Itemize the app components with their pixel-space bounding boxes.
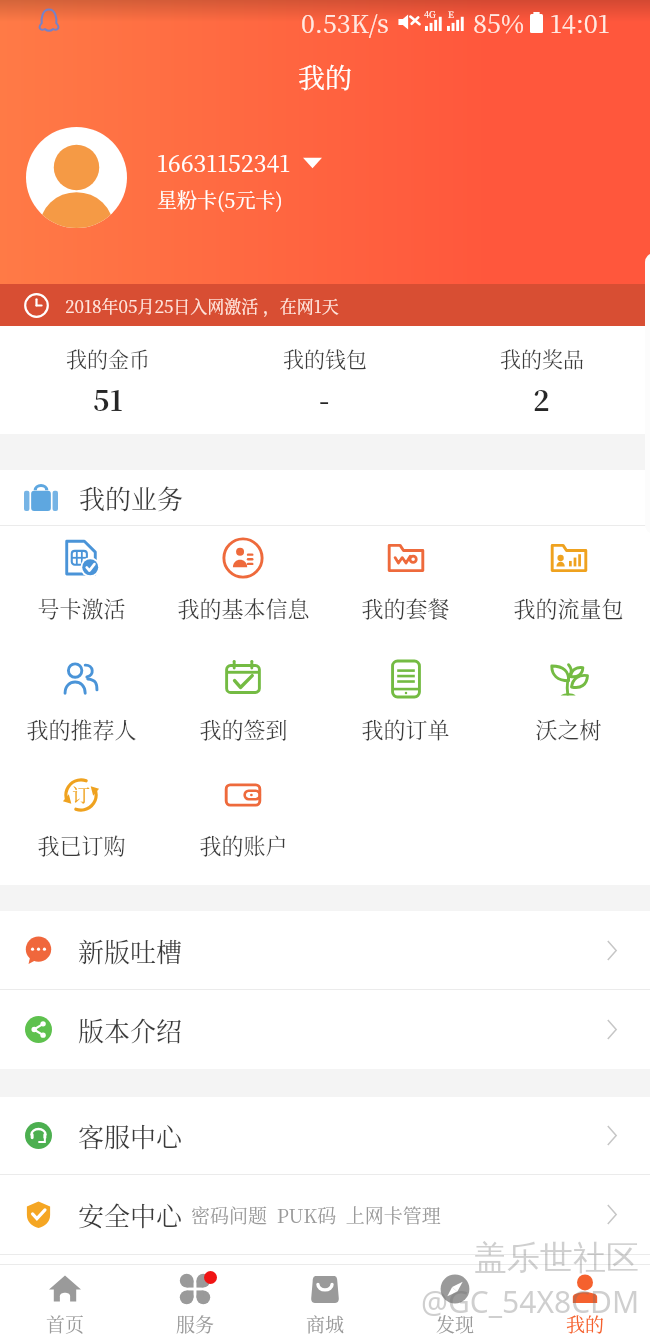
staticText: 2 <box>533 379 550 419</box>
staticText: 新版吐槽 <box>78 932 183 969</box>
staticText: 我的基本信息 <box>177 592 310 624</box>
button[interactable]: 我的基本信息 <box>162 537 324 658</box>
button[interactable]: 沃之树 <box>487 658 650 774</box>
staticText: 版本介绍 <box>78 1011 183 1048</box>
button[interactable]: 我的钱包 <box>216 326 433 434</box>
staticText: 号卡激活 <box>37 592 126 624</box>
staticText: 51 <box>93 379 123 419</box>
button[interactable]: 版本介绍 <box>0 990 650 1069</box>
button[interactable]: 服务 <box>130 1265 260 1336</box>
staticText: 订 <box>72 781 90 807</box>
staticText: 我的奖品 <box>500 343 584 373</box>
staticText: 我的业务 <box>79 479 184 516</box>
button[interactable]: 我的订单 <box>324 658 487 774</box>
button[interactable]: 订 <box>0 774 162 885</box>
staticText: 0.53K/s <box>301 4 389 40</box>
button[interactable]: 号卡激活 <box>0 537 162 658</box>
staticText: 14:01 <box>550 4 610 40</box>
staticText: 客服中心 <box>78 1117 183 1154</box>
staticText: 我的 <box>298 57 352 96</box>
button[interactable]: 我的账户 <box>162 774 324 885</box>
button[interactable]: 安全中心 <box>0 1175 650 1254</box>
staticText: 沃之树 <box>535 713 602 745</box>
staticText: 我的套餐 <box>361 592 450 624</box>
staticText: 85% <box>473 4 524 40</box>
button[interactable]: 商城 <box>260 1265 390 1336</box>
button[interactable]: 我的流量包 <box>487 537 650 658</box>
staticText: 我的流量包 <box>513 592 624 624</box>
button[interactable]: 新版吐槽 <box>0 911 650 989</box>
staticText: E <box>448 8 454 21</box>
staticText: 服务 <box>176 1310 215 1336</box>
staticText: 4G <box>424 8 436 21</box>
button[interactable]: 我的 <box>520 1265 650 1336</box>
staticText: @GC_54X8CDM <box>421 1281 640 1322</box>
button[interactable]: 我的签到 <box>162 658 324 774</box>
staticText: - <box>319 379 330 419</box>
staticText: 我的推荐人 <box>26 713 137 745</box>
staticText: 星粉卡(5元卡) <box>157 185 283 214</box>
staticText: 我已订购 <box>37 829 126 861</box>
staticText: 我的钱包 <box>283 343 367 373</box>
staticText: 盖乐世社区 <box>474 1237 639 1279</box>
staticText: 密码问题 PUK码 上网卡管理 <box>191 1201 441 1228</box>
button[interactable]: 我的业务 <box>0 470 650 525</box>
staticText: 我的金币 <box>66 343 150 373</box>
button[interactable]: 我的推荐人 <box>0 658 162 774</box>
staticText: 商城 <box>306 1310 345 1336</box>
staticText: 安全中心 <box>78 1196 183 1233</box>
staticText: 我的账户 <box>199 829 288 861</box>
staticText: 发现 <box>436 1310 475 1336</box>
button[interactable]: 我的奖品 <box>433 326 650 434</box>
staticText: 首页 <box>46 1310 85 1336</box>
staticText: 我的订单 <box>361 713 450 745</box>
staticText: 16631152341 <box>157 146 291 179</box>
staticText: 我的 <box>566 1310 605 1336</box>
button[interactable]: 首页 <box>0 1265 130 1336</box>
button[interactable]: 我的金币 <box>0 326 216 434</box>
button[interactable]: 客服中心 <box>0 1097 650 1174</box>
button[interactable]: Avatar <box>26 127 127 228</box>
staticText: 2018年05月25日入网激活 ，在网1天 <box>65 293 339 317</box>
button[interactable]: 发现 <box>390 1265 520 1336</box>
staticText: 我的签到 <box>199 713 288 745</box>
button[interactable]: 我的套餐 <box>324 537 487 658</box>
